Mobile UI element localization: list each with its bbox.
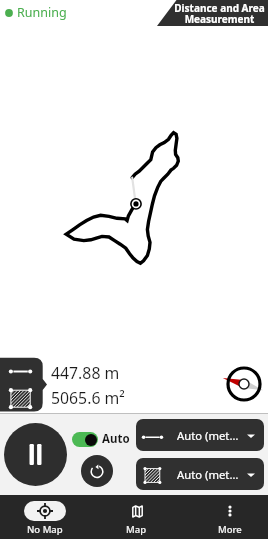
staticText: 447.88 m — [51, 362, 120, 384]
staticText: Auto (met… — [177, 467, 239, 482]
button[interactable]: Undo — [81, 455, 113, 487]
staticText: Auto (met… — [177, 428, 239, 443]
staticText: 5065.6 m² — [51, 387, 125, 409]
staticText: More — [218, 523, 242, 536]
button[interactable]: Map — [93, 495, 180, 539]
button[interactable]: Auto — [72, 431, 130, 447]
button[interactable]: Auto (met… — [136, 419, 264, 451]
button[interactable]: Pause — [4, 423, 67, 486]
staticText: Auto — [102, 431, 130, 447]
button[interactable]: More — [186, 495, 268, 539]
staticText: Running — [17, 4, 67, 21]
staticText: Map — [126, 523, 147, 536]
button[interactable]: Auto (met… — [136, 458, 264, 490]
staticText: No Map — [27, 523, 63, 536]
staticText: Distance and Area Measurement — [174, 1, 265, 26]
button[interactable]: No Map — [1, 495, 88, 539]
